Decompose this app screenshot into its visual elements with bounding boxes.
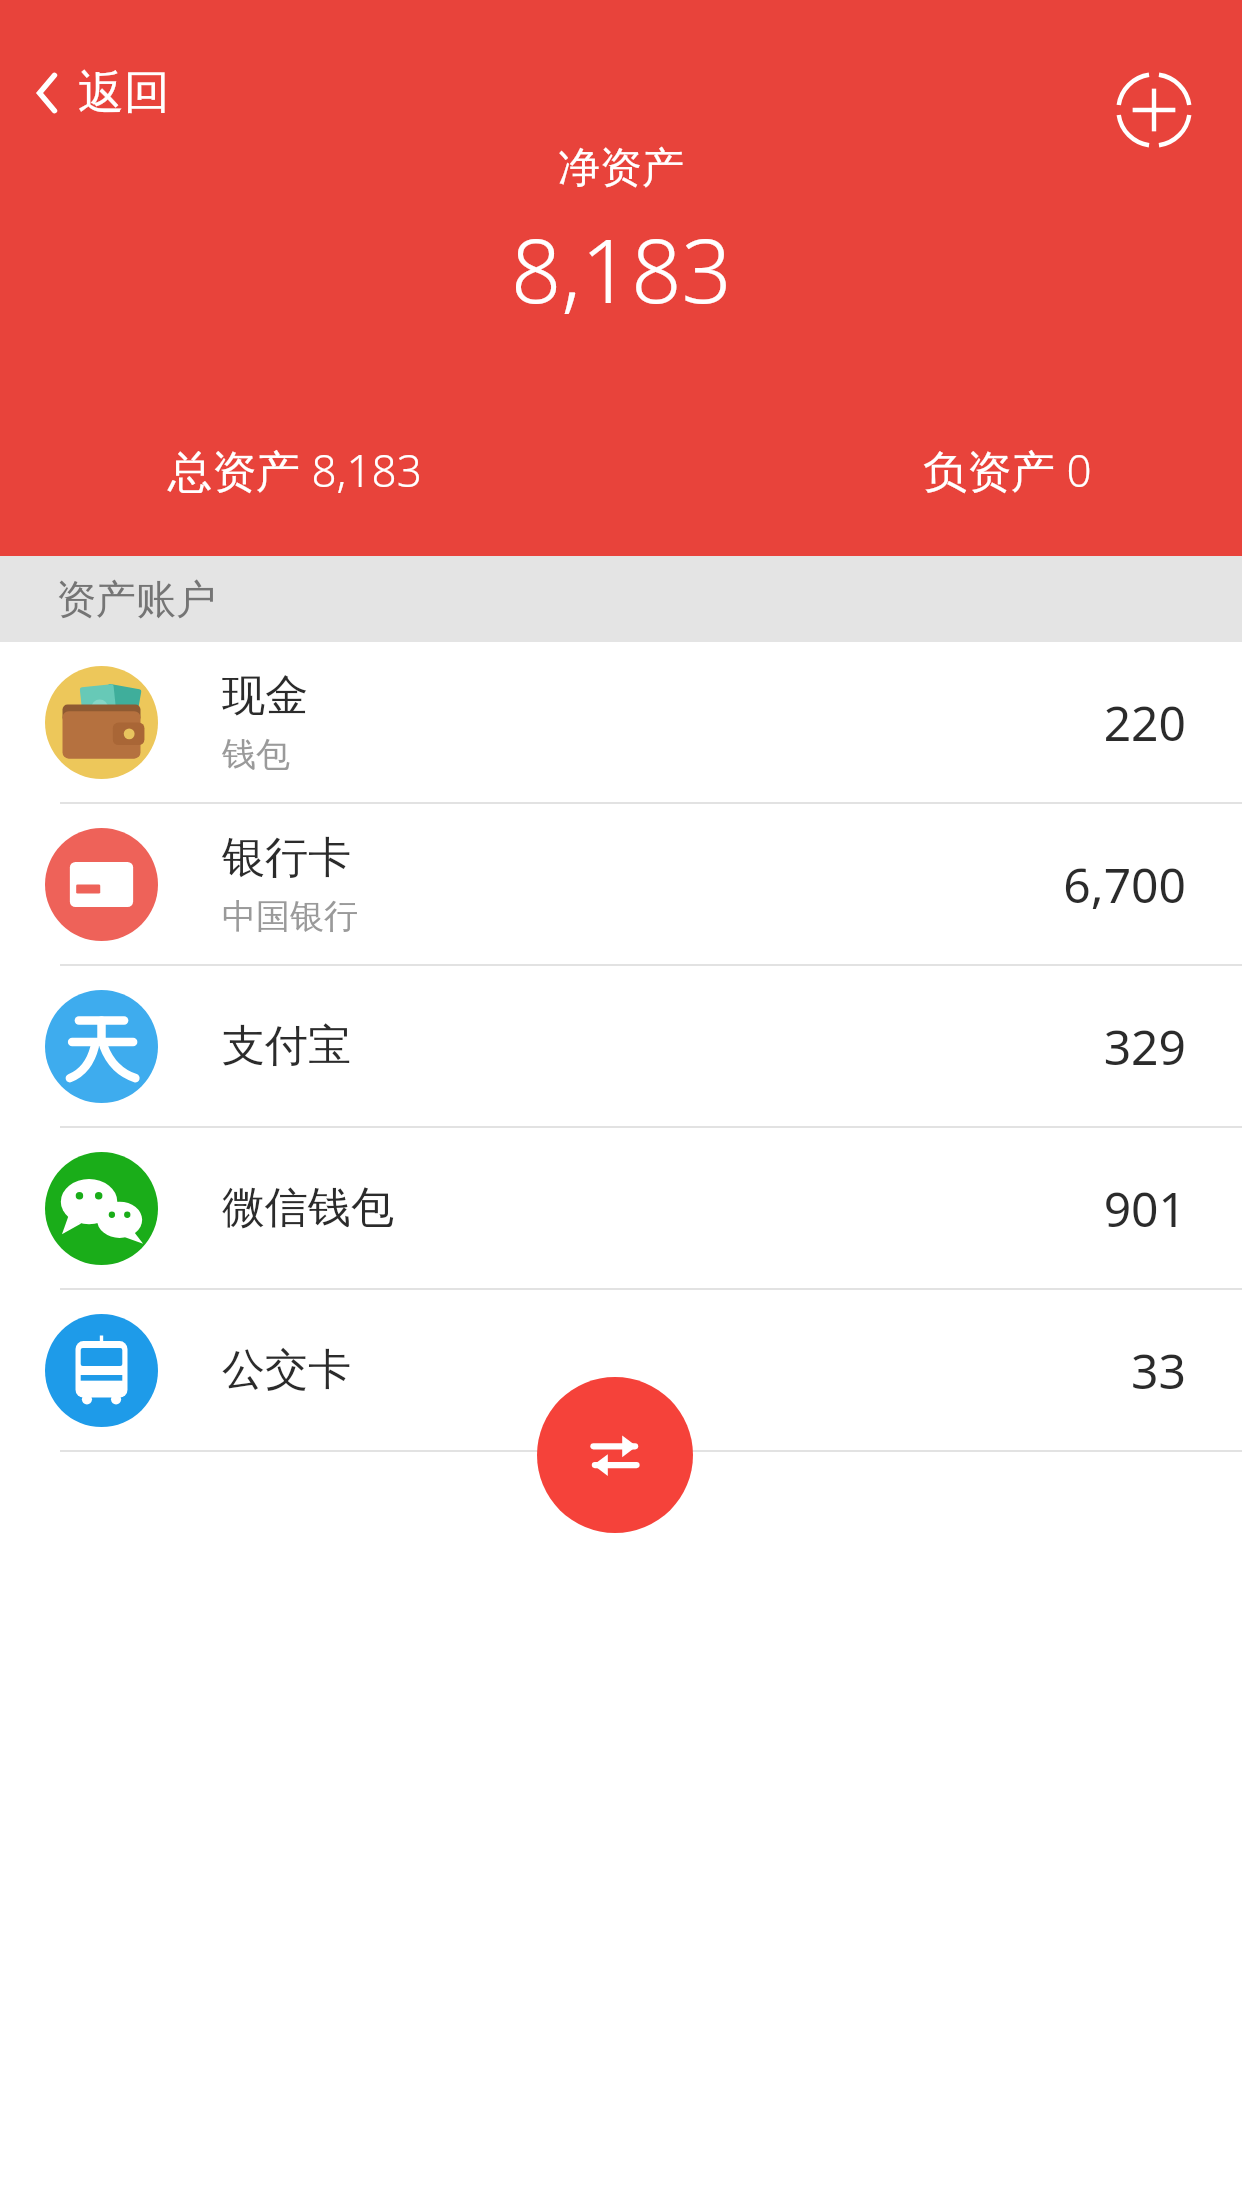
staticText: 公交卡 <box>222 1343 351 1397</box>
staticText: 返回 <box>78 64 170 122</box>
button[interactable]: 现金 <box>0 642 1242 804</box>
staticText: 329 <box>1103 1014 1186 1079</box>
staticText: 支付宝 <box>222 1019 351 1073</box>
staticText: 901 <box>1103 1176 1186 1241</box>
staticText: 银行卡 <box>222 831 351 885</box>
staticText: 中国银行 <box>222 895 358 938</box>
button[interactable]: 银行卡 <box>0 804 1242 966</box>
button[interactable]: 微信钱包 <box>0 1128 1242 1290</box>
staticText: 微信钱包 <box>222 1181 394 1235</box>
staticText: 钱包 <box>222 733 290 776</box>
staticText: 现金 <box>222 669 308 723</box>
staticText: 33 <box>1131 1338 1186 1403</box>
staticText: 6,700 <box>1063 852 1186 917</box>
staticText: 总资产 8,183 <box>168 440 422 500</box>
button[interactable]: 公交卡 <box>0 1290 1242 1452</box>
button[interactable]: 返回 <box>22 48 178 138</box>
button[interactable]: Add account <box>1110 66 1198 154</box>
button[interactable]: Transfer <box>537 1377 693 1533</box>
button[interactable]: 支付宝 <box>0 966 1242 1128</box>
staticText: 负资产 0 <box>923 440 1092 500</box>
staticText: 资产账户 <box>56 574 216 624</box>
staticText: 220 <box>1103 690 1186 755</box>
staticText: 8,183 <box>511 209 732 329</box>
staticText: 净资产 <box>558 142 684 195</box>
